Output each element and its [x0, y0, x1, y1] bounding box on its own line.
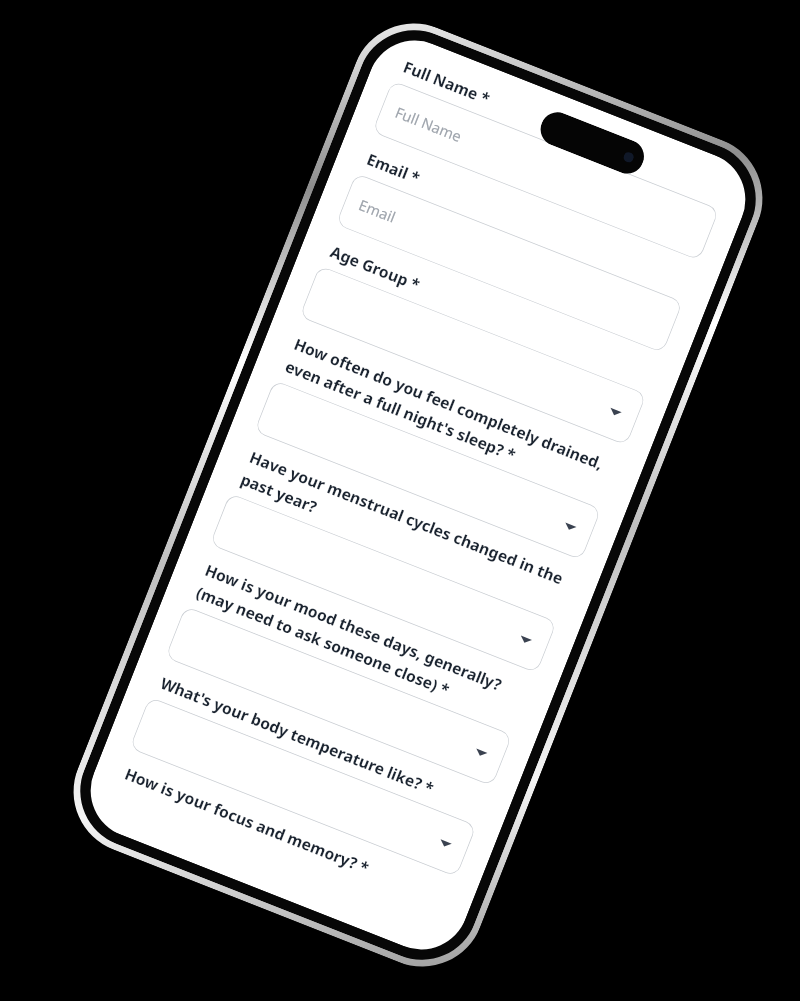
staticText: Full Name *: [400, 56, 494, 109]
staticText: Have your menstrual cycles changed in th…: [238, 446, 576, 615]
staticText: What's your body temperature like? *: [157, 672, 437, 799]
staticText: Age Group *: [327, 241, 423, 295]
button[interactable]: Email: [336, 173, 683, 353]
staticText: How is your focus and memory? *: [122, 763, 373, 878]
button[interactable]: Open dropdown: [299, 265, 647, 446]
staticText: Full Name: [392, 102, 465, 147]
button[interactable]: Full Name: [372, 80, 719, 261]
staticText: Email: [356, 195, 399, 228]
staticText: How is your mood these days, generally? …: [193, 559, 532, 728]
button[interactable]: Open dropdown: [165, 606, 512, 786]
button[interactable]: Open dropdown: [254, 380, 601, 560]
button[interactable]: Open dropdown: [129, 697, 477, 877]
button[interactable]: Open dropdown: [210, 493, 557, 673]
staticText: Email *: [364, 148, 424, 189]
staticText: How often do you feel completely drained…: [282, 333, 621, 502]
